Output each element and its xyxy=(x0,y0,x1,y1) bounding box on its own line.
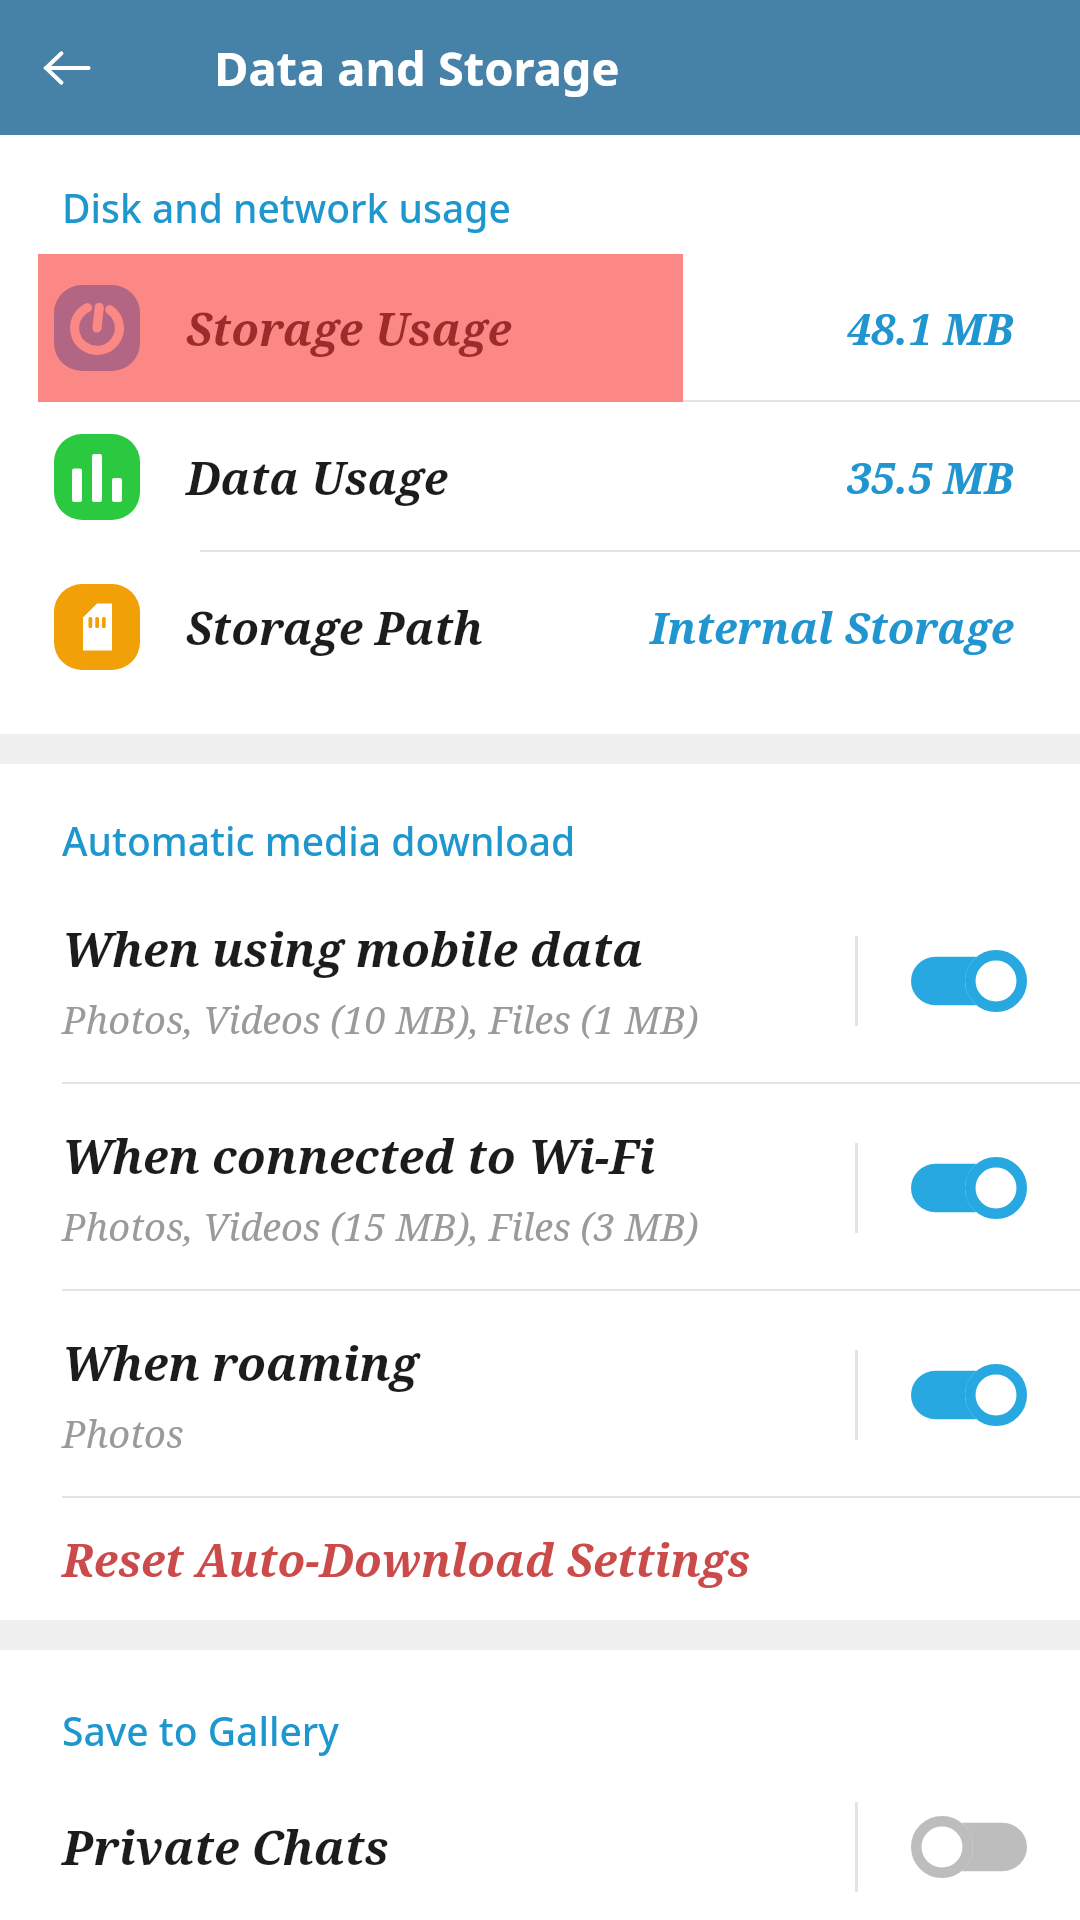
other: Disabled xyxy=(911,1816,1027,1878)
button[interactable]: Data Usage xyxy=(0,402,1080,552)
button[interactable]: Private Chats xyxy=(0,1773,1080,1920)
staticText: Automatic media download xyxy=(62,814,576,867)
staticText: Storage Path xyxy=(186,597,483,658)
staticText: Photos xyxy=(62,1407,184,1459)
staticText: Save to Gallery xyxy=(62,1704,339,1757)
staticText: Disk and network usage xyxy=(62,181,511,234)
staticText: Reset Auto-Download Settings xyxy=(62,1529,751,1590)
staticText: 35.5 MB xyxy=(847,448,1014,507)
staticText: When using mobile data xyxy=(62,917,644,981)
other: Enabled xyxy=(911,1157,1027,1219)
button[interactable]: When connected to Wi-Fi xyxy=(0,1084,1080,1291)
staticText: Data and Storage xyxy=(214,36,620,100)
staticText: When roaming xyxy=(62,1331,419,1395)
staticText: Storage Usage xyxy=(186,298,512,359)
other: Enabled xyxy=(911,950,1027,1012)
button[interactable]: Storage Path xyxy=(0,552,1080,702)
staticText: Photos, Videos (10 MB), Files (1 MB) xyxy=(62,993,699,1045)
button[interactable]: When roaming xyxy=(0,1291,1080,1498)
staticText: Internal Storage xyxy=(650,598,1014,657)
other: Enabled xyxy=(911,1364,1027,1426)
button[interactable]: Reset Auto-Download Settings xyxy=(0,1498,1080,1620)
staticText: 48.1 MB xyxy=(847,299,1014,358)
staticText: Private Chats xyxy=(62,1815,855,1879)
staticText: When connected to Wi-Fi xyxy=(62,1124,656,1188)
button[interactable]: Storage Usage xyxy=(0,254,1080,402)
staticText: Data Usage xyxy=(186,447,448,508)
button[interactable]: Back xyxy=(24,25,110,111)
staticText: Photos, Videos (15 MB), Files (3 MB) xyxy=(62,1200,699,1252)
button[interactable]: When using mobile data xyxy=(0,877,1080,1084)
